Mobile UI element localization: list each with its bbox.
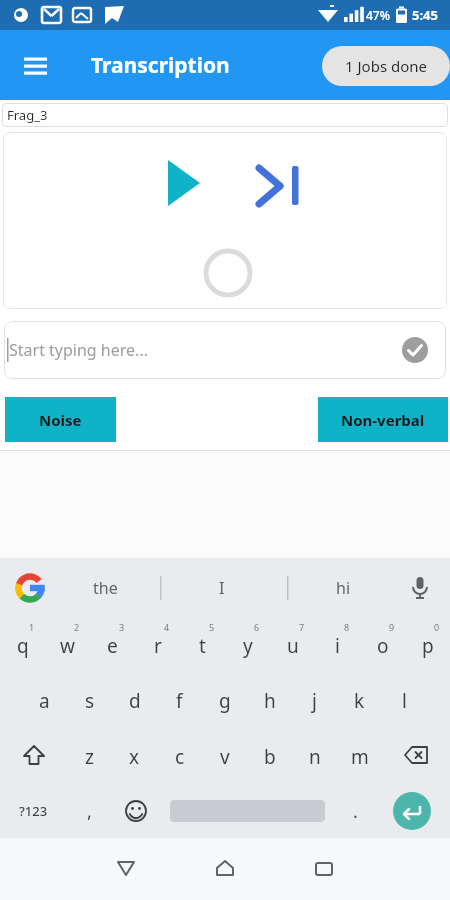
button[interactable] xyxy=(108,851,144,887)
button[interactable] xyxy=(112,784,160,838)
staticText: f xyxy=(176,688,183,714)
staticText: p xyxy=(422,633,434,659)
button[interactable]: k xyxy=(337,673,382,728)
button[interactable] xyxy=(0,728,67,784)
button[interactable]: . xyxy=(325,784,385,838)
button[interactable] xyxy=(20,49,52,81)
button[interactable]: v xyxy=(202,729,247,784)
button[interactable]: s xyxy=(67,673,112,728)
button[interactable]: w xyxy=(45,618,90,673)
staticText: , xyxy=(87,799,92,824)
staticText: 5:45 xyxy=(412,6,438,24)
button[interactable]: c xyxy=(157,729,202,784)
button[interactable]: b xyxy=(247,729,292,784)
staticText: 1 xyxy=(29,621,35,633)
staticText: n xyxy=(309,744,321,770)
staticText: 9 xyxy=(389,621,395,633)
button[interactable]: u xyxy=(270,618,315,673)
staticText: hi xyxy=(336,577,351,599)
staticText: c xyxy=(175,744,185,770)
button[interactable]: p xyxy=(405,618,450,673)
button[interactable]: y xyxy=(225,618,270,673)
button[interactable] xyxy=(207,851,243,887)
button[interactable]: q xyxy=(0,618,45,673)
staticText: 0 xyxy=(434,621,440,633)
button[interactable]: a xyxy=(22,673,67,728)
button[interactable]: h xyxy=(247,673,292,728)
staticText: u xyxy=(287,633,299,659)
button[interactable] xyxy=(408,576,432,600)
staticText: k xyxy=(354,688,365,714)
button[interactable]: l xyxy=(382,673,427,728)
staticText: Transcription xyxy=(91,51,230,80)
button[interactable] xyxy=(250,157,302,209)
staticText: I xyxy=(219,577,225,599)
button[interactable]: m xyxy=(337,729,382,784)
button[interactable]: x xyxy=(112,729,157,784)
staticText: the xyxy=(93,577,118,599)
staticText: v xyxy=(220,744,230,770)
staticText: x xyxy=(129,744,140,770)
staticText: m xyxy=(351,744,369,770)
staticText: r xyxy=(154,633,162,659)
staticText: ?123 xyxy=(19,802,48,820)
staticText: 5 xyxy=(209,621,215,633)
staticText: 4 xyxy=(164,621,170,633)
button[interactable]: i xyxy=(315,618,360,673)
button[interactable]: Noise xyxy=(5,397,116,442)
staticText: q xyxy=(17,633,29,659)
button[interactable]: t xyxy=(180,618,225,673)
staticText: y xyxy=(243,633,253,659)
staticText: l xyxy=(402,688,407,714)
staticText: Start typing here... xyxy=(9,339,148,361)
staticText: i xyxy=(335,633,340,659)
staticText: j xyxy=(312,688,317,714)
button[interactable]: z xyxy=(67,729,112,784)
button[interactable] xyxy=(158,160,210,212)
button[interactable] xyxy=(402,337,428,363)
staticText: b xyxy=(264,744,276,770)
staticText: 8 xyxy=(344,621,350,633)
staticText: 2 xyxy=(74,621,80,633)
button[interactable]: I xyxy=(182,566,262,610)
button[interactable] xyxy=(306,851,342,887)
staticText: s xyxy=(85,688,95,714)
staticText: Non-verbal xyxy=(341,410,425,430)
button[interactable] xyxy=(393,792,431,830)
button[interactable]: j xyxy=(292,673,337,728)
button[interactable] xyxy=(382,728,450,784)
button[interactable]: Non-verbal xyxy=(318,397,448,442)
staticText: a xyxy=(39,688,50,714)
button[interactable]: r xyxy=(135,618,180,673)
button[interactable]: ?123 xyxy=(0,784,67,838)
staticText: Noise xyxy=(39,410,82,430)
button[interactable]: g xyxy=(202,673,247,728)
staticText: e xyxy=(107,633,118,659)
button[interactable]: the xyxy=(65,566,145,610)
staticText: 6 xyxy=(254,621,260,633)
button[interactable]: e xyxy=(90,618,135,673)
button[interactable]: 1 Jobs done xyxy=(322,46,450,86)
staticText: 7 xyxy=(299,621,305,633)
staticText: 47% xyxy=(366,7,390,23)
staticText: w xyxy=(60,633,75,659)
button[interactable]: f xyxy=(157,673,202,728)
staticText: 3 xyxy=(119,621,125,633)
staticText: g xyxy=(219,688,231,714)
staticText: 1 Jobs done xyxy=(345,56,427,76)
staticText: z xyxy=(85,744,94,770)
staticText: d xyxy=(129,688,141,714)
button[interactable] xyxy=(15,573,45,603)
button[interactable]: n xyxy=(292,729,337,784)
staticText: . xyxy=(353,799,358,824)
staticText: o xyxy=(377,633,389,659)
staticText: h xyxy=(264,688,276,714)
staticText: Frag_3 xyxy=(7,106,48,124)
button[interactable]: d xyxy=(112,673,157,728)
staticText: t xyxy=(199,633,206,659)
button[interactable]: , xyxy=(67,784,112,838)
button[interactable]: hi xyxy=(303,566,383,610)
button[interactable]: o xyxy=(360,618,405,673)
